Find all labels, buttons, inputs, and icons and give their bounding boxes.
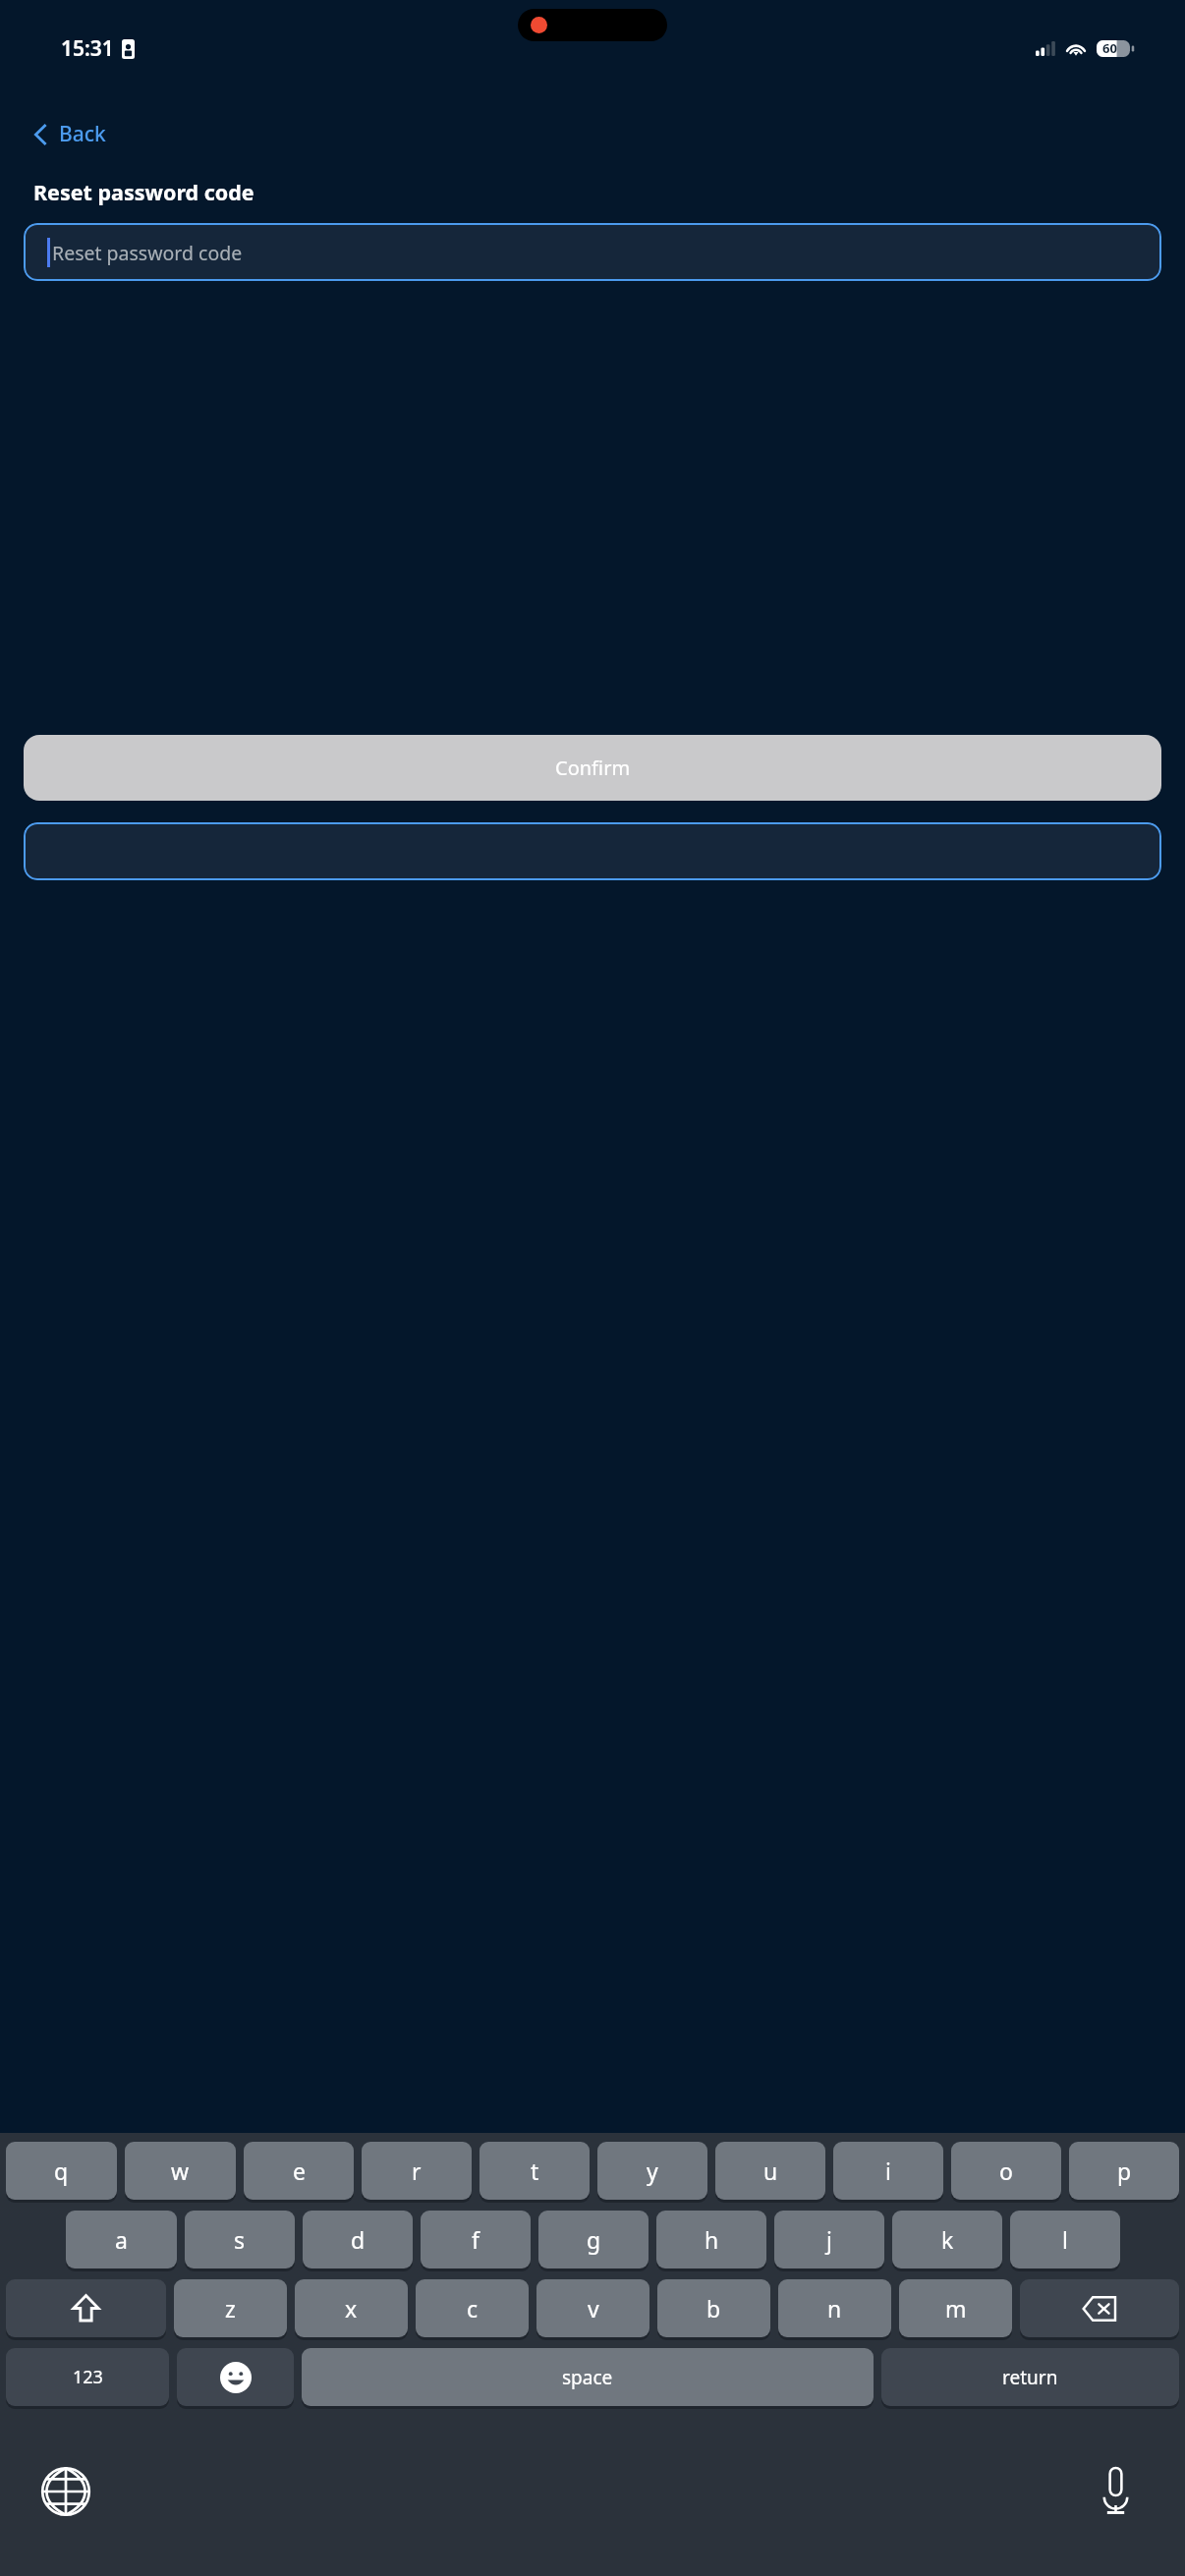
button[interactable]: a [66, 2211, 177, 2268]
button[interactable]: 123 [6, 2348, 169, 2406]
staticText: space [562, 2365, 613, 2390]
button[interactable]: i [833, 2142, 943, 2200]
staticText: z [225, 2293, 236, 2324]
button[interactable]: x [295, 2279, 408, 2337]
button[interactable]: s [185, 2211, 295, 2268]
button[interactable]: r [362, 2142, 472, 2200]
button[interactable]: Confirm [24, 735, 1161, 801]
button[interactable]: n [778, 2279, 891, 2337]
button[interactable]: q [6, 2142, 117, 2200]
staticText: i [885, 2156, 891, 2186]
button[interactable]: Back [26, 114, 114, 154]
button[interactable]: t [480, 2142, 590, 2200]
staticText: p [1117, 2156, 1132, 2186]
staticText: t [531, 2156, 539, 2186]
staticText: a [115, 2224, 128, 2255]
button[interactable]: Emoji [177, 2348, 294, 2406]
button[interactable]: l [1010, 2211, 1120, 2268]
button[interactable]: c [416, 2279, 529, 2337]
button[interactable] [24, 822, 1161, 880]
staticText: Reset password code [52, 240, 243, 266]
button[interactable]: w [125, 2142, 236, 2200]
button[interactable]: j [774, 2211, 884, 2268]
staticText: Back [59, 120, 106, 148]
button[interactable]: o [951, 2142, 1061, 2200]
button[interactable]: Voice input [1087, 2463, 1144, 2520]
button[interactable]: y [597, 2142, 707, 2200]
staticText: r [412, 2156, 422, 2186]
button[interactable]: Backspace [1020, 2279, 1179, 2337]
button[interactable]: space [302, 2348, 874, 2406]
staticText: x [345, 2293, 358, 2324]
staticText: 15:31 [61, 34, 114, 63]
staticText: return [1002, 2365, 1058, 2390]
button[interactable]: m [899, 2279, 1012, 2337]
staticText: h [705, 2224, 719, 2255]
button[interactable]: u [715, 2142, 825, 2200]
staticText: g [587, 2224, 601, 2255]
button[interactable]: z [174, 2279, 287, 2337]
staticText: k [941, 2224, 954, 2255]
button[interactable]: h [656, 2211, 766, 2268]
button[interactable]: f [421, 2211, 531, 2268]
button[interactable]: d [303, 2211, 413, 2268]
button[interactable]: v [536, 2279, 649, 2337]
staticText: Reset password code [33, 178, 254, 206]
staticText: 123 [73, 2365, 103, 2389]
staticText: b [706, 2293, 721, 2324]
button[interactable]: Change keyboard language [37, 2463, 94, 2520]
staticText: 60 [1102, 39, 1117, 57]
staticText: q [54, 2156, 69, 2186]
staticText: l [1062, 2224, 1068, 2255]
staticText: Confirm [555, 755, 631, 781]
staticText: o [999, 2156, 1013, 2186]
button[interactable]: return [881, 2348, 1179, 2406]
staticText: f [472, 2224, 480, 2255]
button[interactable]: g [538, 2211, 649, 2268]
staticText: m [945, 2293, 967, 2324]
staticText: w [171, 2156, 190, 2186]
staticText: v [588, 2293, 599, 2324]
staticText: u [763, 2156, 778, 2186]
staticText: y [647, 2156, 658, 2186]
button[interactable]: p [1069, 2142, 1179, 2200]
staticText: j [826, 2224, 832, 2255]
button[interactable]: Shift [6, 2279, 166, 2337]
staticText: c [467, 2293, 479, 2324]
staticText: d [351, 2224, 366, 2255]
button[interactable]: k [892, 2211, 1002, 2268]
button[interactable]: b [657, 2279, 770, 2337]
button[interactable]: e [244, 2142, 354, 2200]
button[interactable]: Reset password code [24, 223, 1161, 281]
staticText: e [293, 2156, 306, 2186]
staticText: n [827, 2293, 842, 2324]
staticText: s [234, 2224, 246, 2255]
